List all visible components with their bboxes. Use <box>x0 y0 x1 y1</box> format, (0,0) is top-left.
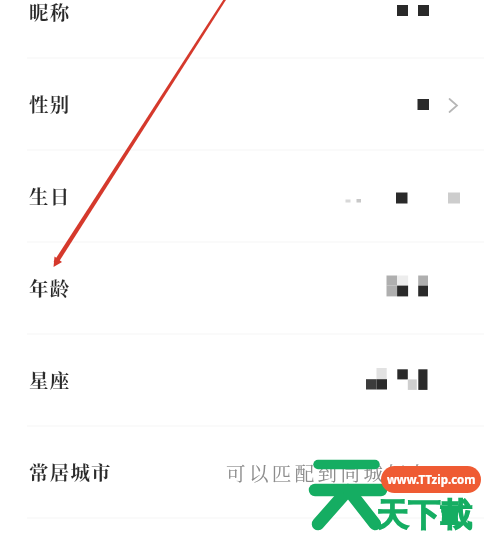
button[interactable]: 性别 <box>0 58 484 150</box>
staticText: 天下載 <box>376 495 472 534</box>
staticText: www.TTzip.com <box>387 472 476 488</box>
staticText: 性别 <box>29 90 71 118</box>
button[interactable]: 昵称 <box>0 0 484 58</box>
button[interactable]: 年龄 <box>0 242 484 334</box>
button[interactable]: 常居城市 <box>0 426 484 518</box>
staticText: 生日 <box>29 182 71 210</box>
staticText: 昵称 <box>29 0 71 26</box>
staticText: 常居城市 <box>29 458 112 486</box>
button[interactable]: 生日 <box>0 150 484 242</box>
staticText: 可以匹配到同城好友 <box>226 459 433 487</box>
button[interactable]: 星座 <box>0 334 484 426</box>
staticText: 年龄 <box>29 274 71 302</box>
staticText: 星座 <box>29 366 71 394</box>
